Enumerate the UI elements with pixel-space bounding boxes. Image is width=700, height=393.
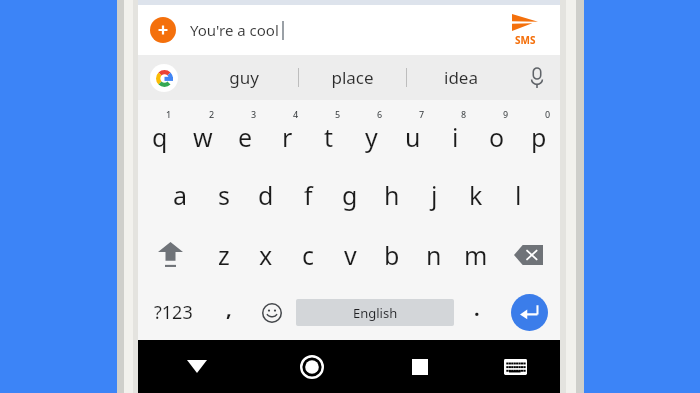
staticText: 1 <box>166 108 172 120</box>
staticText: place <box>331 66 374 89</box>
button[interactable]: d <box>245 165 287 225</box>
staticText: idea <box>444 66 478 89</box>
button[interactable]: 9 <box>476 100 518 165</box>
staticText: 2 <box>209 108 215 120</box>
staticText: m <box>464 238 488 272</box>
staticText: f <box>304 178 313 212</box>
button[interactable]: 3 <box>224 100 266 165</box>
staticText: ?123 <box>154 300 193 325</box>
button[interactable]: Shift <box>138 225 202 285</box>
button[interactable]: Period <box>456 285 498 340</box>
staticText: l <box>515 178 522 212</box>
button[interactable]: guy <box>190 55 298 100</box>
staticText: 9 <box>503 108 509 120</box>
button[interactable]: 0 <box>518 100 560 165</box>
button[interactable]: Recents <box>368 340 471 393</box>
button[interactable]: f <box>287 165 329 225</box>
button[interactable]: Emoji <box>250 285 294 340</box>
staticText: 3 <box>251 108 257 120</box>
staticText: y <box>365 120 378 154</box>
button[interactable]: Enter <box>498 285 560 340</box>
button[interactable]: Change keyboard <box>471 340 560 393</box>
staticText: r <box>282 120 293 154</box>
staticText: SMS <box>515 33 536 47</box>
staticText: k <box>469 178 483 212</box>
staticText: 0 <box>545 108 551 120</box>
staticText: , <box>226 295 232 322</box>
staticText: 4 <box>293 108 299 120</box>
button[interactable]: Google <box>138 55 190 100</box>
button[interactable]: 4 <box>266 100 308 165</box>
button[interactable]: j <box>413 165 455 225</box>
staticText: h <box>384 178 400 212</box>
button[interactable]: b <box>371 225 413 285</box>
staticText: 6 <box>377 108 383 120</box>
staticText: o <box>489 120 505 154</box>
button[interactable]: k <box>455 165 497 225</box>
button[interactable]: l <box>497 165 539 225</box>
staticText: w <box>193 120 213 154</box>
button[interactable]: Backspace <box>497 225 560 285</box>
staticText: c <box>302 238 315 272</box>
button[interactable]: Voice input <box>514 55 560 100</box>
staticText: s <box>218 178 230 212</box>
button[interactable]: z <box>202 225 245 285</box>
staticText: a <box>173 178 188 212</box>
button[interactable]: idea <box>407 55 514 100</box>
staticText: p <box>531 120 547 154</box>
button[interactable]: s <box>202 165 245 225</box>
staticText: d <box>258 178 274 212</box>
staticText: b <box>384 238 400 272</box>
button[interactable]: x <box>245 225 287 285</box>
staticText: 8 <box>461 108 467 120</box>
button[interactable]: h <box>371 165 413 225</box>
staticText: t <box>324 120 334 154</box>
staticText: g <box>342 178 358 212</box>
staticText: q <box>152 120 168 154</box>
staticText: x <box>259 238 273 272</box>
button[interactable]: m <box>455 225 497 285</box>
button[interactable]: 1 <box>138 100 181 165</box>
staticText: j <box>431 178 438 212</box>
staticText: 5 <box>335 108 341 120</box>
button[interactable]: a <box>159 165 202 225</box>
staticText: i <box>452 120 459 154</box>
button[interactable]: 6 <box>350 100 392 165</box>
button[interactable]: Home <box>255 340 368 393</box>
button[interactable]: v <box>329 225 371 285</box>
button[interactable]: c <box>287 225 329 285</box>
staticText: n <box>426 238 442 272</box>
button[interactable]: Send SMS <box>502 5 548 55</box>
staticText: u <box>405 120 421 154</box>
button[interactable]: 7 <box>392 100 434 165</box>
staticText: v <box>344 238 357 272</box>
button[interactable]: place <box>299 55 406 100</box>
button[interactable]: 2 <box>181 100 224 165</box>
button[interactable]: 5 <box>308 100 350 165</box>
staticText: . <box>474 295 480 322</box>
staticText: e <box>238 120 253 154</box>
button[interactable]: g <box>329 165 371 225</box>
staticText: You're a cool <box>190 20 279 40</box>
staticText: z <box>218 238 230 272</box>
button[interactable]: 8 <box>434 100 476 165</box>
button[interactable]: Comma <box>208 285 250 340</box>
staticText: English <box>353 304 398 322</box>
button[interactable]: Back <box>138 340 255 393</box>
button[interactable]: n <box>413 225 455 285</box>
button[interactable]: English <box>296 299 454 326</box>
staticText: 7 <box>419 108 425 120</box>
button[interactable]: ?123 <box>138 285 208 340</box>
staticText: guy <box>229 66 259 89</box>
button[interactable]: Add attachment <box>150 17 176 43</box>
